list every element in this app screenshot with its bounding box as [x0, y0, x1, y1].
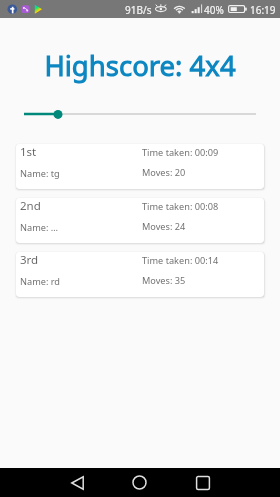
staticText: 16:19 [250, 3, 276, 17]
staticText: 3rd [20, 252, 39, 268]
staticText: Time taken: 00:14 [142, 254, 219, 267]
button[interactable]: 1st [16, 144, 264, 189]
staticText: Moves: 24 [142, 220, 186, 233]
staticText: 91B/s [125, 3, 152, 17]
button[interactable]: Recent apps [179, 468, 226, 497]
button[interactable]: Board size slider [0, 106, 280, 122]
staticText: Name: rd [20, 275, 61, 288]
staticText: Moves: 35 [142, 274, 186, 287]
staticText: 40% [204, 3, 224, 17]
staticText: Time taken: 00:09 [142, 146, 219, 159]
staticText: Time taken: 00:08 [142, 200, 219, 213]
staticText: Name: tg [20, 167, 60, 180]
button[interactable]: 2nd [16, 198, 264, 243]
staticText: 2nd [20, 198, 41, 214]
button[interactable]: Home [116, 468, 163, 497]
button[interactable]: Back [54, 468, 101, 497]
staticText: 1st [20, 144, 37, 160]
staticText: Moves: 20 [142, 166, 186, 179]
staticText: Highscore: 4x4 [0, 47, 280, 84]
staticText: Name: … [20, 221, 59, 234]
button[interactable]: 3rd [16, 252, 264, 297]
